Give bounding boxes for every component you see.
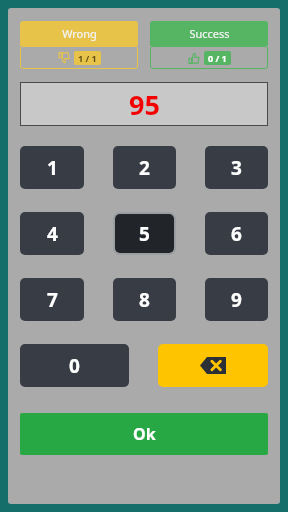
staticText: 3 <box>231 155 242 181</box>
staticText: 8 <box>139 287 150 313</box>
staticText: 1 / 1 <box>78 52 97 64</box>
button[interactable]: Wrong <box>20 21 138 69</box>
staticText: 7 <box>47 287 58 313</box>
staticText: 4 <box>47 221 58 247</box>
staticText: 0 / 1 <box>208 52 227 64</box>
button[interactable]: 9 <box>205 278 268 321</box>
staticText: 9 <box>231 287 242 313</box>
button[interactable]: Backspace <box>158 344 268 387</box>
button[interactable]: 3 <box>205 146 268 189</box>
button[interactable]: 0 <box>20 344 129 387</box>
staticText: Success <box>189 26 230 41</box>
staticText: Ok <box>133 423 156 445</box>
button[interactable]: Ok <box>20 413 268 455</box>
staticText: Wrong <box>62 26 97 41</box>
staticText: 95 <box>129 86 160 123</box>
button[interactable]: 5 <box>115 214 174 253</box>
staticText: 5 <box>139 221 150 247</box>
button[interactable]: 6 <box>205 212 268 255</box>
staticText: 0 <box>69 353 80 379</box>
button[interactable]: 7 <box>20 278 84 321</box>
staticText: 1 <box>47 155 58 181</box>
staticText: 2 <box>139 155 150 181</box>
button[interactable]: Success <box>150 21 268 69</box>
button[interactable]: 2 <box>113 146 176 189</box>
button[interactable]: 1 <box>20 146 84 189</box>
staticText: 6 <box>231 221 242 247</box>
button[interactable]: 8 <box>113 278 176 321</box>
button[interactable]: 4 <box>20 212 84 255</box>
